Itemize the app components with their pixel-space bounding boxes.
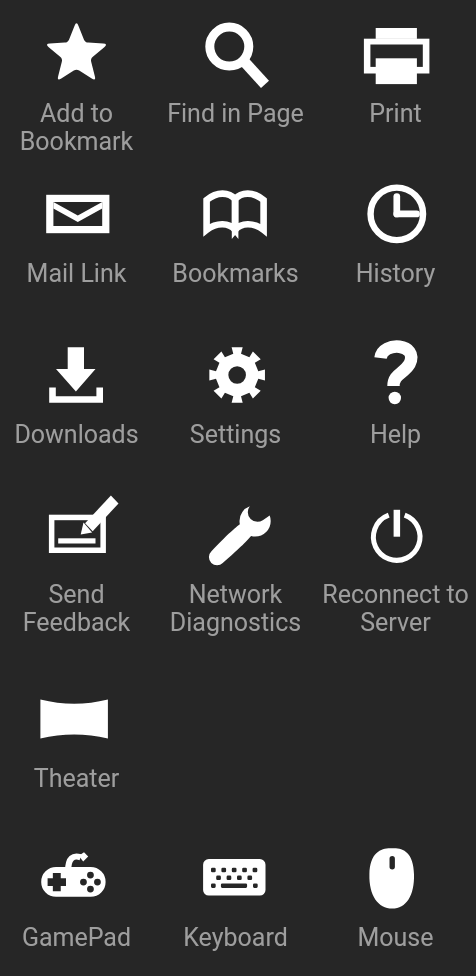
staticText: GamePad [0,923,156,952]
staticText: Keyboard [156,923,315,952]
staticText: Find in Page [156,99,315,128]
staticText: Bookmarks [156,259,315,288]
button[interactable]: Mouse [316,843,475,963]
button[interactable]: Network Diagnostics [156,500,315,620]
staticText: Add to Bookmark [0,99,156,156]
button[interactable]: Theater [0,684,156,804]
button[interactable]: Downloads [0,340,156,460]
staticText: History [316,259,475,288]
staticText: Downloads [0,420,156,449]
staticText: Settings [156,420,315,449]
button[interactable]: Keyboard [156,843,315,963]
staticText: Network Diagnostics [156,580,315,637]
staticText: Send Feedback [0,580,156,637]
button[interactable]: Settings [156,340,315,460]
button[interactable]: Send Feedback [0,500,156,620]
button[interactable]: Mail Link [0,179,156,299]
staticText: Mail Link [0,259,156,288]
button[interactable]: Find in Page [156,19,315,139]
button[interactable]: GamePad [0,843,156,963]
button[interactable]: Reconnect to Server [316,500,475,620]
button[interactable]: Print [316,19,475,139]
button[interactable]: Help [316,340,475,460]
staticText: Reconnect to Server [316,580,475,637]
button[interactable]: Add to Bookmark [0,19,156,139]
staticText: Print [316,99,475,128]
staticText: Help [316,420,475,449]
staticText: Theater [0,764,156,793]
staticText: Mouse [316,923,475,952]
button[interactable]: History [316,179,475,299]
button[interactable]: Bookmarks [156,179,315,299]
